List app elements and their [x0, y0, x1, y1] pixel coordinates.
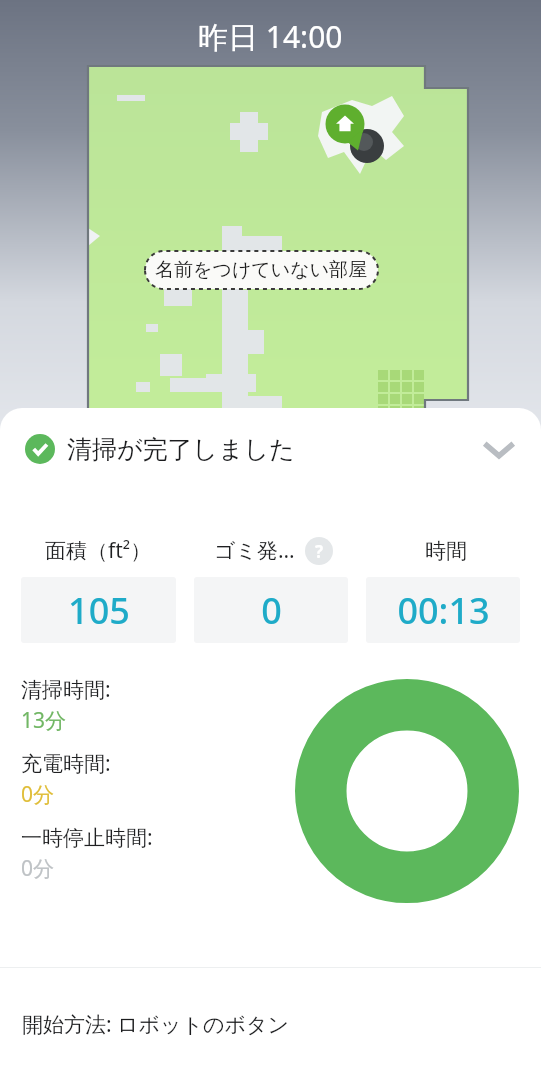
button[interactable]: 名前をつけていない部屋 — [145, 251, 378, 289]
staticText: 0 — [261, 586, 282, 635]
staticText: 時間 — [425, 538, 467, 564]
staticText: 清掃が完了しました — [67, 434, 295, 465]
staticText: 面積（ft²） — [45, 536, 152, 565]
button[interactable]: 開始方法: ロボットのボタン — [0, 968, 541, 1080]
staticText: 開始方法: ロボットのボタン — [22, 1010, 290, 1039]
button[interactable]: Help — [305, 537, 333, 565]
staticText: ゴミ発… — [214, 536, 295, 565]
staticText: 昨日 14:00 — [198, 16, 343, 57]
button[interactable]: 0 — [194, 577, 348, 643]
staticText: 充電時間: — [21, 749, 111, 778]
button[interactable]: Collapse — [475, 425, 523, 473]
staticText: 清掃時間: — [21, 675, 111, 704]
staticText: 名前をつけていない部屋 — [155, 258, 368, 282]
button[interactable]: 105 — [21, 577, 176, 643]
button[interactable]: 00:13 — [366, 577, 520, 643]
staticText: 00:13 — [397, 586, 490, 635]
staticText: 0分 — [21, 780, 55, 809]
staticText: 13分 — [21, 706, 67, 735]
button[interactable]: 清掃が完了しました — [0, 408, 541, 490]
staticText: 一時停止時間: — [21, 823, 153, 852]
staticText: ? — [315, 540, 324, 563]
staticText: 105 — [68, 586, 130, 635]
staticText: 0分 — [21, 854, 55, 883]
